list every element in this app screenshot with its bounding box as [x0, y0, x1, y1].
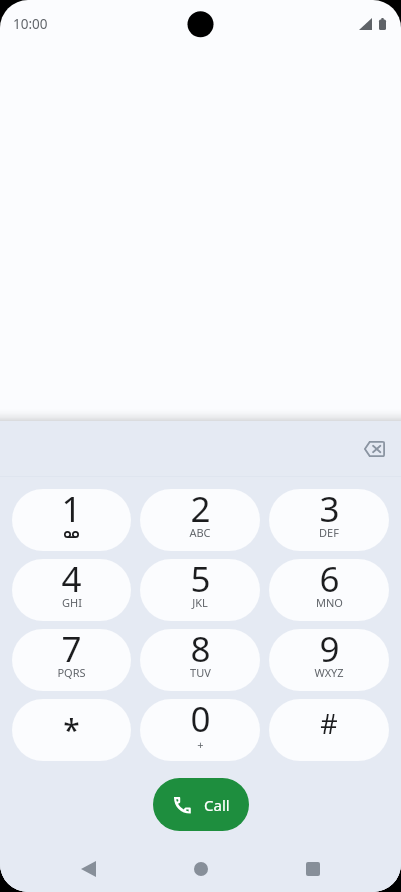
staticText: ABC [189, 525, 211, 540]
staticText: WXYZ [314, 665, 344, 680]
button[interactable]: 3 [269, 489, 389, 551]
button[interactable]: Backspace [354, 429, 394, 469]
button[interactable]: 8 [140, 629, 260, 691]
staticText: PQRS [57, 665, 86, 680]
button[interactable]: 6 [269, 559, 389, 621]
button[interactable]: 0 [140, 699, 260, 761]
button[interactable]: 7 [12, 629, 131, 691]
staticText: 10:00 [13, 15, 48, 33]
staticText: Call [204, 795, 230, 815]
staticText: * [63, 709, 80, 750]
button[interactable]: Home [177, 846, 225, 892]
staticText: + [197, 737, 204, 752]
staticText: DEF [319, 525, 339, 540]
staticText: 0 [190, 699, 211, 743]
button[interactable]: 5 [140, 559, 260, 621]
button[interactable]: 9 [269, 629, 389, 691]
button[interactable]: Call [153, 778, 249, 831]
staticText: 8 [190, 629, 211, 673]
button[interactable]: Recents [289, 846, 337, 892]
staticText: TUV [190, 665, 211, 680]
staticText: 5 [190, 559, 211, 603]
button[interactable]: Back [64, 846, 112, 892]
staticText: 2 [190, 489, 211, 533]
staticText: 4 [61, 559, 82, 603]
staticText: 7 [61, 629, 82, 673]
staticText: GHI [62, 595, 82, 610]
button[interactable]: # [269, 699, 389, 761]
button[interactable]: * [12, 699, 131, 761]
button[interactable]: 2 [140, 489, 260, 551]
staticText: JKL [192, 595, 208, 610]
staticText: # [320, 705, 338, 742]
staticText: 6 [319, 559, 340, 603]
button[interactable]: 1 [12, 489, 131, 551]
staticText: 9 [319, 629, 340, 673]
staticText: 1 [61, 489, 82, 533]
staticText: MNO [316, 595, 343, 610]
button[interactable]: 4 [12, 559, 131, 621]
staticText: 3 [319, 489, 340, 533]
